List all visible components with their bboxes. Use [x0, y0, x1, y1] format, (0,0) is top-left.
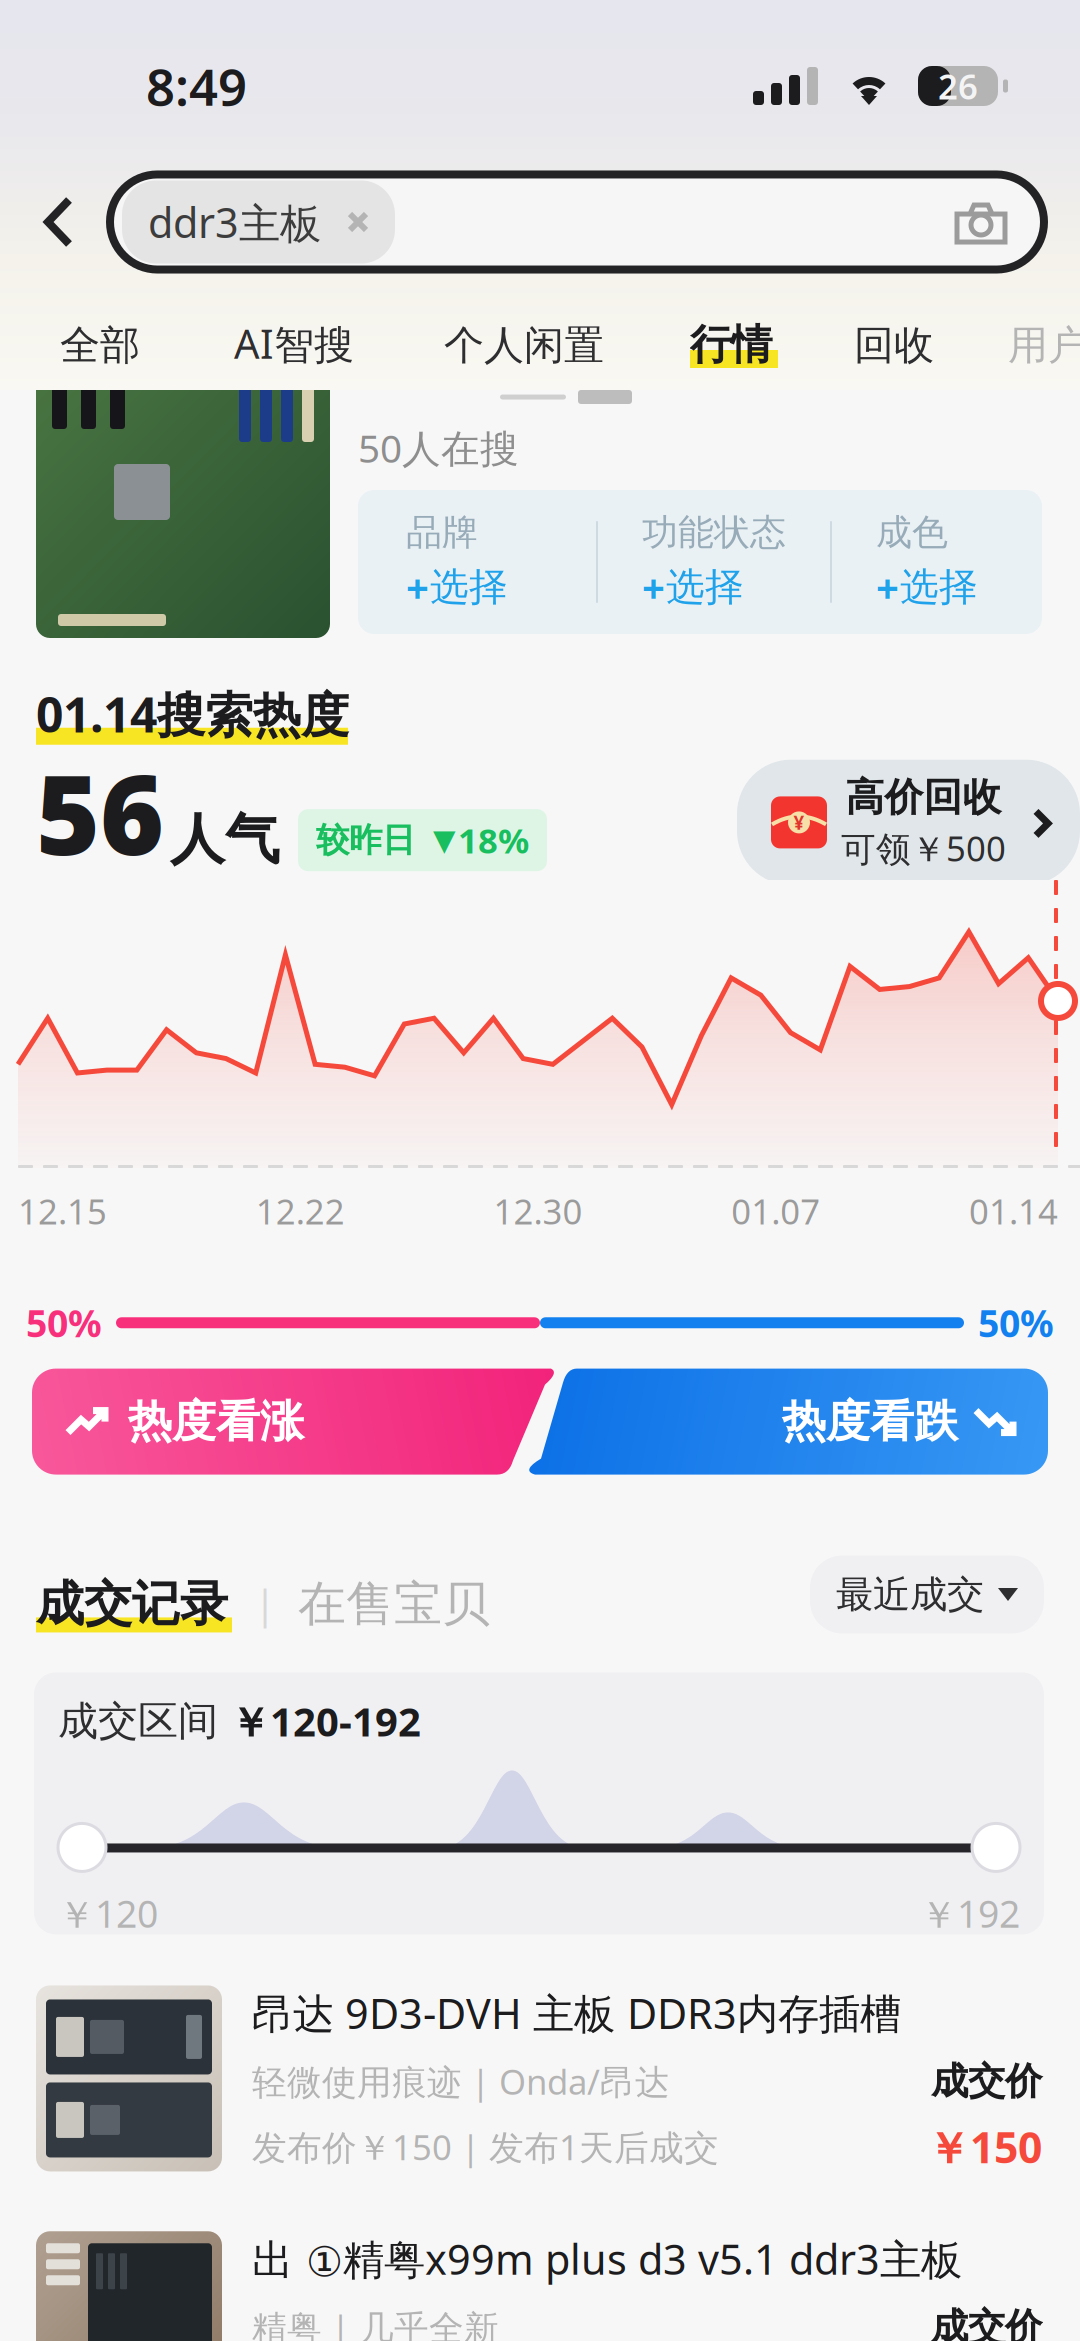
staticText: |: [254, 1576, 276, 1629]
button[interactable]: 成色: [832, 510, 1010, 614]
button[interactable]: AI智搜: [140, 317, 354, 370]
staticText: 回收: [854, 321, 934, 370]
staticText: ddr3主板: [148, 194, 321, 249]
staticText: 热度看跌: [782, 1395, 958, 1449]
staticText: 热度看涨: [128, 1395, 304, 1449]
staticText: 12.30: [493, 1188, 582, 1234]
button[interactable]: 热度看跌: [32, 1369, 559, 1475]
button[interactable]: 热度看涨: [32, 1369, 559, 1475]
staticText: 轻微使用痕迹 | Onda/昂达: [252, 2058, 670, 2104]
staticText: 出 ①精粤x99m plus d3 v5.1 ddr3主板: [252, 2231, 962, 2286]
staticText: ￥120: [58, 1888, 158, 1938]
button[interactable]: 在售宝贝: [298, 1574, 490, 1633]
staticText: 成交记录: [36, 1574, 228, 1633]
staticText: 成交区间: [58, 1696, 230, 1746]
staticText: ￥150: [927, 2118, 1042, 2175]
button[interactable]: ddr3主板: [122, 180, 395, 263]
staticText: ▼: [433, 823, 456, 857]
staticText: 用户: [1008, 321, 1080, 370]
staticText: 成交价: [931, 2304, 1042, 2341]
button[interactable]: 回收: [778, 321, 934, 370]
staticText: 50人在搜: [358, 422, 519, 473]
staticText: +: [642, 560, 665, 614]
staticText: 选择: [430, 563, 508, 611]
staticText: 50%: [978, 1298, 1054, 1348]
staticText: 成交价: [931, 2058, 1042, 2104]
staticText: 01.14: [969, 1188, 1058, 1234]
staticText: 功能状态: [642, 510, 786, 554]
staticText: 在售宝贝: [298, 1574, 490, 1633]
button[interactable]: 功能状态: [598, 510, 830, 614]
staticText: +: [876, 560, 899, 614]
staticText: 01.14搜索热度: [36, 682, 349, 746]
staticText: 26: [938, 63, 978, 109]
button[interactable]: 品牌: [358, 510, 596, 614]
staticText: 01.07: [731, 1188, 820, 1234]
staticText: 高价回收: [845, 774, 1001, 821]
staticText: 可领￥500: [841, 825, 1006, 871]
staticText: +: [406, 560, 429, 614]
button[interactable]: 全部: [0, 321, 140, 370]
staticText: 50%: [26, 1298, 102, 1348]
staticText: 全部: [60, 321, 140, 370]
staticText: 昂达 9D3-DVH 主板 DDR3内存插槽: [252, 1985, 901, 2040]
button[interactable]: 昂达 9D3-DVH 主板 DDR3内存插槽: [0, 1985, 1080, 2175]
staticText: ￥120-192: [230, 1694, 421, 1748]
button[interactable]: 出 ①精粤x99m plus d3 v5.1 ddr3主板: [0, 2231, 1080, 2341]
button[interactable]: 成交记录: [36, 1574, 232, 1633]
staticText: 发布价￥150 | 发布1天后成交: [252, 2124, 719, 2170]
button[interactable]: Search by image: [952, 198, 1044, 246]
staticText: 个人闲置: [444, 321, 604, 370]
staticText: AI智搜: [234, 317, 354, 370]
staticText: 品牌: [406, 510, 478, 554]
staticText: 成色: [876, 510, 948, 554]
staticText: 最近成交: [836, 1572, 984, 1617]
staticText: 选择: [900, 563, 978, 611]
staticText: 12.22: [256, 1188, 345, 1234]
staticText: ¥: [793, 810, 804, 835]
staticText: 18%: [458, 817, 529, 863]
staticText: 人气: [170, 806, 280, 873]
staticText: ￥192: [920, 1888, 1020, 1938]
button[interactable]: 个人闲置: [354, 321, 604, 370]
staticText: 56: [36, 740, 164, 885]
staticText: 精粤 | 几乎全新: [252, 2304, 499, 2341]
staticText: 8:49: [146, 52, 247, 120]
staticText: 12.15: [18, 1188, 107, 1234]
button[interactable]: 行情: [604, 319, 778, 370]
staticText: 较昨日: [316, 820, 415, 861]
staticText: 行情: [690, 319, 772, 370]
button[interactable]: Back: [0, 193, 110, 251]
button[interactable]: 最近成交: [810, 1556, 1044, 1633]
staticText: 选择: [666, 563, 744, 611]
button[interactable]: ¥: [737, 760, 1080, 885]
